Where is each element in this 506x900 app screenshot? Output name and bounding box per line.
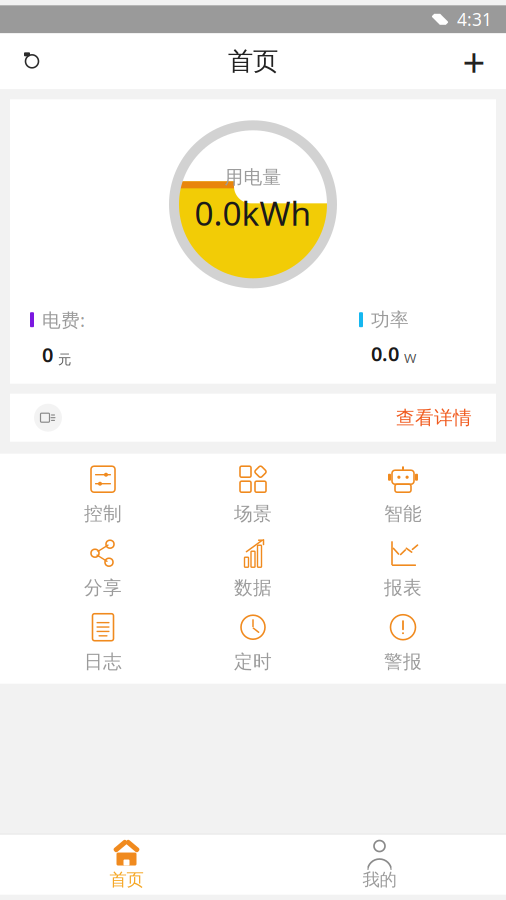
staticText: 首页 — [109, 869, 143, 890]
staticText: 定时 — [234, 650, 272, 673]
staticText: 报表 — [384, 576, 422, 599]
staticText: 4:31 — [457, 8, 492, 31]
staticText: 查看详情 — [396, 406, 472, 429]
button[interactable]: 场景 — [178, 458, 328, 532]
staticText: 0.0 — [371, 340, 399, 367]
staticText: W — [404, 349, 416, 367]
staticText: + — [462, 35, 485, 88]
button[interactable]: 报表 — [328, 532, 478, 606]
button[interactable]: 数据 — [178, 532, 328, 606]
staticText: 功率 — [371, 308, 409, 331]
staticText: 元 — [58, 351, 71, 368]
button[interactable]: 定时 — [178, 606, 328, 680]
staticText: 警报 — [384, 650, 422, 673]
button[interactable]: 查看详情 — [10, 394, 496, 442]
staticText: 场景 — [234, 502, 272, 525]
staticText: 智能 — [384, 502, 422, 525]
button[interactable]: 智能 — [328, 458, 478, 532]
staticText: 首页 — [228, 46, 278, 77]
button[interactable]: 日志 — [28, 606, 178, 680]
staticText: 控制 — [84, 502, 122, 525]
staticText: 数据 — [234, 576, 272, 599]
button[interactable]: 分享 — [28, 532, 178, 606]
staticText: 分享 — [84, 576, 122, 599]
staticText: 我的 — [362, 869, 396, 890]
button[interactable]: 首页 — [0, 835, 253, 895]
button[interactable]: 添加 — [452, 39, 496, 83]
staticText: 日志 — [84, 650, 122, 673]
staticText: 0 — [42, 341, 53, 368]
button[interactable]: 警报 — [328, 606, 478, 680]
button[interactable]: 我的 — [253, 835, 506, 895]
button[interactable]: 刷新 — [10, 39, 54, 83]
button[interactable]: 控制 — [28, 458, 178, 532]
staticText: 0.0kWh — [194, 191, 311, 235]
staticText: 电费: — [42, 307, 85, 332]
staticText: 用电量 — [224, 166, 281, 189]
